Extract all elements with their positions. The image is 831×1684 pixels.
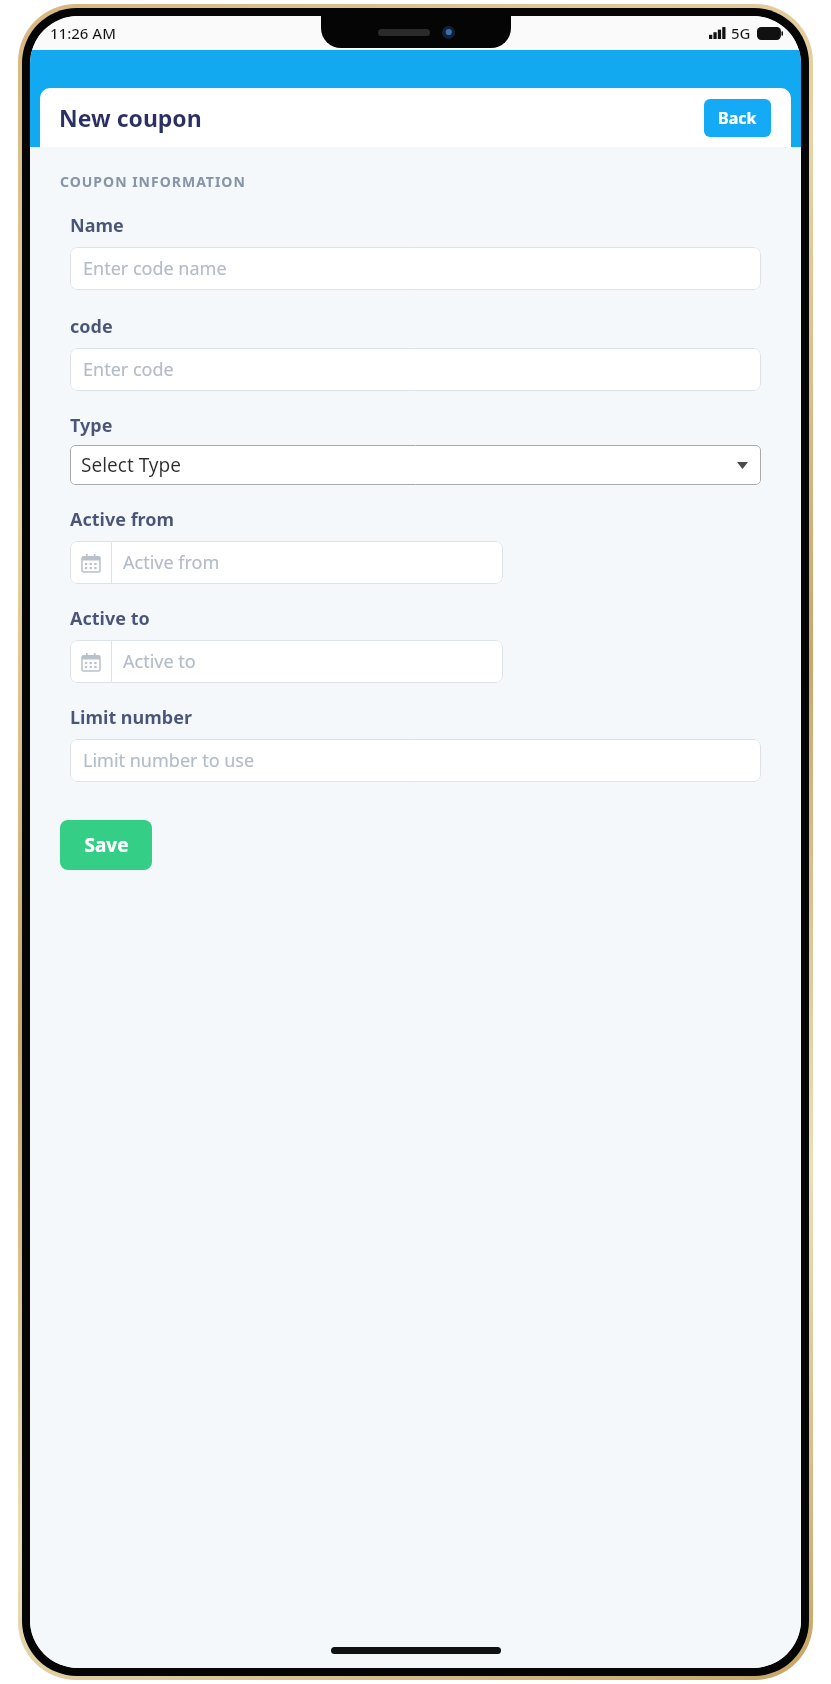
staticText: COUPON INFORMATION [60, 172, 246, 191]
staticText: Select Type [81, 452, 181, 478]
staticText: Limit number [70, 705, 192, 730]
button[interactable]: Back [704, 99, 771, 137]
staticText: Active from [123, 550, 220, 575]
staticText: 11:26 AM [50, 23, 116, 43]
staticText: 5G [731, 23, 751, 43]
staticText: Active to [70, 606, 150, 631]
staticText: Enter code [83, 357, 174, 382]
button[interactable]: Enter code [70, 348, 761, 391]
button[interactable]: Pick date Active to [70, 640, 503, 683]
staticText: code [70, 314, 113, 339]
staticText: Name [70, 213, 124, 238]
staticText: Active from [70, 507, 175, 532]
button[interactable]: Enter code name [70, 247, 761, 290]
staticText: Back [718, 107, 757, 129]
staticText: Active to [123, 649, 196, 674]
button[interactable]: Limit number to use [70, 739, 761, 782]
staticText: Enter code name [83, 256, 227, 281]
staticText: Save [84, 832, 129, 858]
button[interactable]: Select Type [70, 445, 761, 485]
staticText: Type [70, 413, 113, 438]
button[interactable]: Save [60, 820, 152, 870]
staticText: New coupon [59, 102, 202, 133]
button[interactable]: Pick date Active from [70, 541, 503, 584]
staticText: Limit number to use [83, 748, 255, 773]
